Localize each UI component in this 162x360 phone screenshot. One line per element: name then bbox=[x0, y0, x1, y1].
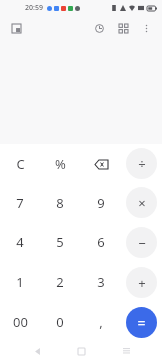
button[interactable]: Recent apps bbox=[118, 343, 134, 359]
button[interactable]: 7 bbox=[0, 183, 40, 222]
button[interactable]: 9 bbox=[80, 183, 121, 222]
button[interactable]: 6 bbox=[80, 222, 121, 262]
button[interactable]: 0 bbox=[40, 302, 80, 342]
button[interactable]: Home bbox=[73, 343, 89, 359]
other: Backspace bbox=[91, 154, 111, 174]
staticText: 20:59 bbox=[25, 3, 43, 13]
button[interactable]: History bbox=[90, 19, 108, 37]
staticText: − bbox=[138, 234, 146, 252]
button[interactable]: 8 bbox=[40, 183, 80, 222]
staticText: C bbox=[16, 155, 25, 173]
button[interactable]: , bbox=[80, 302, 121, 342]
staticText: 1 bbox=[16, 273, 24, 291]
staticText: , bbox=[99, 313, 103, 331]
button[interactable]: 00 bbox=[0, 302, 40, 342]
button[interactable]: C bbox=[0, 144, 40, 183]
button[interactable]: 1 bbox=[0, 262, 40, 302]
button[interactable]: More options bbox=[137, 19, 155, 37]
button[interactable]: − bbox=[121, 222, 162, 262]
button[interactable]: Split screen bbox=[7, 19, 25, 37]
staticText: 3 bbox=[97, 273, 105, 291]
staticText: 00 bbox=[13, 313, 28, 331]
staticText: × bbox=[138, 194, 146, 212]
button[interactable]: + bbox=[121, 262, 162, 302]
staticText: ÷ bbox=[138, 155, 146, 173]
staticText: + bbox=[138, 274, 146, 292]
button[interactable]: ÷ bbox=[121, 144, 162, 183]
button[interactable]: 2 bbox=[40, 262, 80, 302]
staticText: 2 bbox=[56, 273, 64, 291]
staticText: = bbox=[137, 313, 146, 332]
button[interactable]: Scientific mode bbox=[114, 19, 132, 37]
staticText: 6 bbox=[97, 233, 105, 251]
staticText: 9 bbox=[97, 194, 105, 212]
staticText: 4 bbox=[16, 233, 24, 251]
button[interactable]: × bbox=[121, 183, 162, 222]
button[interactable]: = bbox=[121, 302, 162, 342]
button[interactable]: 3 bbox=[80, 262, 121, 302]
staticText: 8 bbox=[56, 194, 64, 212]
staticText: 0 bbox=[56, 313, 64, 331]
button[interactable]: Back bbox=[29, 343, 45, 359]
button[interactable]: Backspace bbox=[80, 144, 121, 183]
button[interactable]: 4 bbox=[0, 222, 40, 262]
button[interactable]: % bbox=[40, 144, 80, 183]
staticText: % bbox=[55, 155, 66, 173]
staticText: 7 bbox=[16, 194, 24, 212]
button[interactable]: 5 bbox=[40, 222, 80, 262]
staticText: 5 bbox=[56, 233, 64, 251]
